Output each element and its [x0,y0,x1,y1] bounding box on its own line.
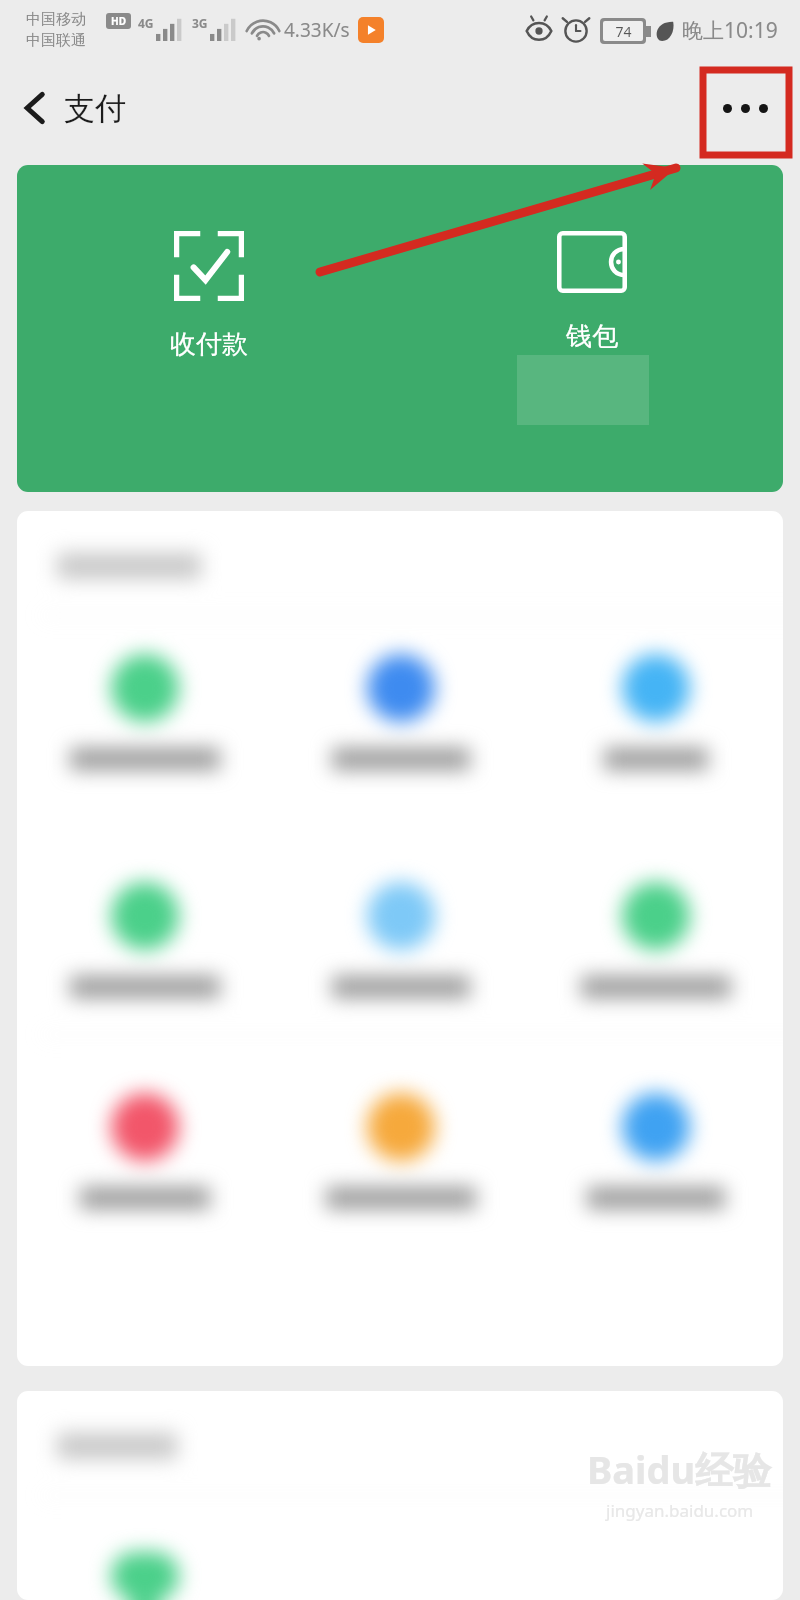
staticText: 晚上10:19 [682,16,778,45]
button[interactable] [528,882,783,998]
button[interactable] [528,1093,783,1209]
button[interactable] [273,654,528,770]
button[interactable]: 钱包 [400,165,783,353]
button[interactable] [17,882,273,998]
staticText: 收付款 [170,328,248,361]
button[interactable]: 收付款 [17,165,400,361]
staticText: 4G [138,15,154,31]
staticText: HD [111,14,126,28]
staticText: 支付 [64,89,126,128]
staticText: 4.33K/s [284,17,350,43]
button[interactable] [17,1093,273,1209]
button[interactable]: More options [712,75,778,141]
staticText: 中国联通 [26,31,86,50]
staticText: 74 [615,22,632,41]
button[interactable] [17,654,273,770]
button[interactable] [528,654,783,770]
staticText: 中国移动 [26,10,86,29]
button[interactable] [273,1093,528,1209]
button[interactable]: 支付 [0,80,140,136]
staticText: 钱包 [566,320,618,353]
staticText: jingyan.baidu.com [606,1499,754,1522]
button[interactable] [273,882,528,998]
staticText: 3G [192,15,208,31]
staticText: Baidu经验 [587,1443,772,1495]
